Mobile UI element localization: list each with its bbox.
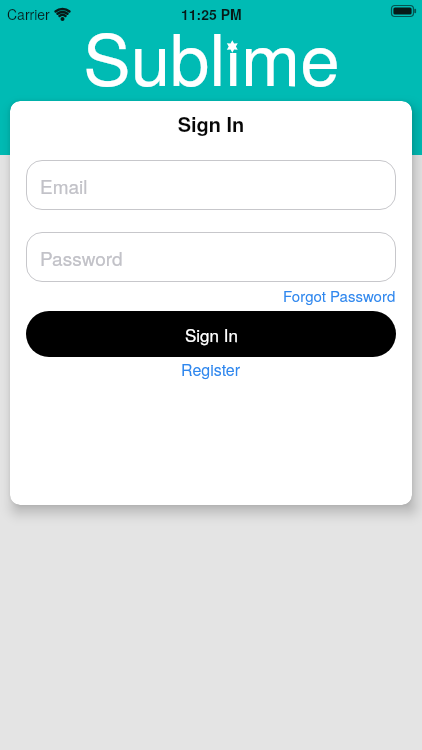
staticText: Email <box>40 172 88 199</box>
staticText: Sign In <box>185 322 238 346</box>
staticText: Sign In <box>26 109 396 138</box>
button[interactable]: Sign In <box>26 311 396 357</box>
staticText: 11:25 PM <box>181 4 242 24</box>
button[interactable]: Forgot Password <box>283 285 396 306</box>
button[interactable]: Register <box>181 358 241 381</box>
staticText: Password <box>40 244 123 271</box>
button[interactable]: Password <box>26 232 396 282</box>
button[interactable]: Email <box>26 160 396 210</box>
staticText: Sublime <box>83 4 340 106</box>
staticText: Carrier <box>7 4 50 24</box>
